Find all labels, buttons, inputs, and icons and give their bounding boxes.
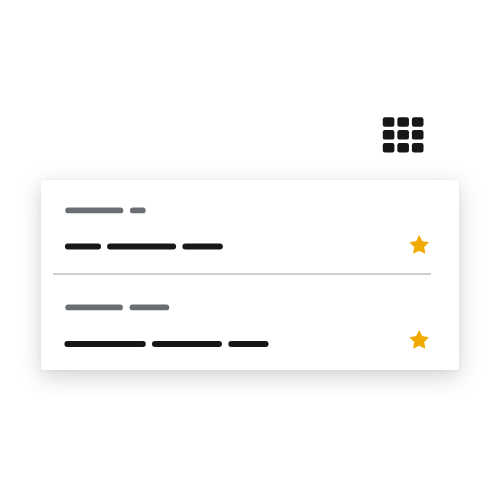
button[interactable]: Favourite (41, 275, 459, 370)
button[interactable]: Favourite (409, 234, 431, 256)
button[interactable]: Favourite (409, 329, 431, 351)
button[interactable]: Favourite (41, 180, 459, 273)
button[interactable]: Apps (379, 111, 427, 159)
